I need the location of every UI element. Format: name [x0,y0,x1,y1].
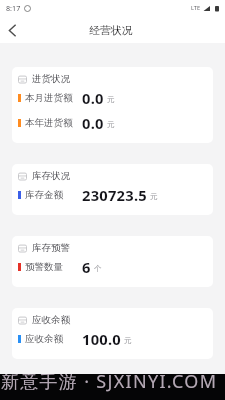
button[interactable]: 库存预警 [12,236,213,287]
button[interactable]: Back [0,18,24,42]
staticText: 新意手游 · SJXINYI.COM [1,374,218,394]
staticText: 元 [150,192,158,202]
staticText: 元 [107,95,115,105]
button[interactable]: 应收余额 [12,308,213,359]
staticText: 0.0 [82,88,104,108]
staticText: 本月进货额 [25,92,73,104]
staticText: 库存预警 [32,242,70,254]
staticText: 库存状况 [32,170,70,182]
staticText: 100.0 [82,329,121,349]
staticText: 元 [107,120,115,130]
staticText: 经营状况 [89,24,133,38]
button[interactable]: 库存状况 [12,164,213,215]
staticText: 应收余额 [32,314,70,326]
staticText: 个 [94,264,102,274]
staticText: 应收余额 [25,333,63,345]
staticText: 元 [124,336,132,346]
staticText: 6 [82,257,91,277]
staticText: 预警数量 [25,261,63,273]
staticText: 本年进货额 [25,117,73,129]
staticText: 8:17 [6,3,21,13]
staticText: 0.0 [82,113,104,133]
staticText: LTE [191,4,201,12]
staticText: 库存金额 [25,189,63,201]
staticText: 230723.5 [82,185,147,205]
staticText: 进货状况 [32,73,70,85]
button[interactable]: 进货状况 [12,67,213,143]
